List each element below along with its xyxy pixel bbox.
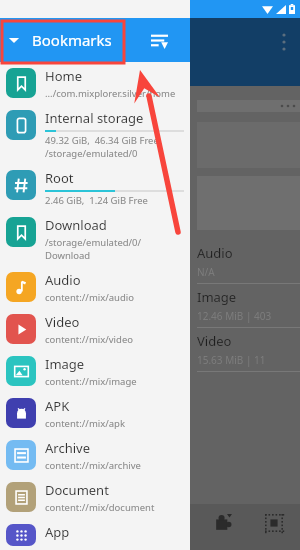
staticText: /storage/emulated/0/ (45, 236, 142, 249)
button[interactable]: Plugins (197, 504, 248, 542)
button[interactable]: APK (0, 392, 190, 434)
staticText: content://mix/apk (45, 417, 126, 430)
staticText: Internal storage (45, 109, 144, 127)
button[interactable]: Image (197, 284, 300, 328)
button[interactable]: Image (0, 350, 190, 392)
staticText: 49.32 GiB, 46.34 GiB Free (45, 134, 159, 147)
staticText: content://mix/video (45, 333, 133, 346)
button[interactable]: Home (0, 62, 190, 104)
staticText: /storage/emulated/0 (45, 147, 138, 160)
button[interactable]: Download (0, 211, 190, 266)
staticText: 12.46 MiB | 403 (197, 309, 272, 323)
staticText: APK (45, 397, 70, 415)
staticText: N/A (197, 265, 215, 279)
button[interactable]: Bookmarks (6, 18, 112, 62)
staticText: content://mix/audio (45, 291, 135, 304)
staticText: Video (197, 332, 232, 350)
staticText: Root (45, 169, 74, 187)
staticText: Image (45, 355, 85, 373)
staticText: content://mix/archive (45, 459, 141, 472)
button[interactable]: More options (272, 22, 296, 62)
staticText: Video (45, 313, 80, 331)
staticText: Bookmarks (32, 30, 112, 50)
button[interactable]: Document (0, 476, 190, 518)
staticText: content://mix/document (45, 501, 155, 514)
button[interactable]: Root (0, 164, 190, 211)
button[interactable]: More options (8, 34, 44, 70)
staticText: .../com.mixplorer.silver/home (45, 87, 176, 100)
staticText: Download (45, 216, 107, 234)
button[interactable]: Video (0, 308, 190, 350)
button[interactable]: Audio (197, 240, 300, 284)
button[interactable]: Video (197, 328, 300, 372)
staticText: App (45, 523, 70, 541)
staticText: 15.63 MiB | 11 (197, 353, 266, 367)
button[interactable]: App (0, 518, 190, 550)
staticText: Audio (45, 271, 81, 289)
button[interactable]: Sort (142, 23, 176, 57)
staticText: content://mix/image (45, 375, 137, 388)
staticText: 2.46 GiB, 1.24 GiB Free (45, 194, 148, 207)
button[interactable]: Select (248, 504, 300, 542)
staticText: Document (45, 481, 109, 499)
staticText: Image (197, 288, 237, 306)
button[interactable]: Internal storage (0, 104, 190, 164)
button[interactable]: Archive (0, 434, 190, 476)
staticText: Home (45, 67, 82, 85)
staticText: Archive (45, 439, 90, 457)
staticText: Audio (197, 244, 233, 262)
staticText: Download (45, 249, 91, 262)
button[interactable]: Audio (0, 266, 190, 308)
